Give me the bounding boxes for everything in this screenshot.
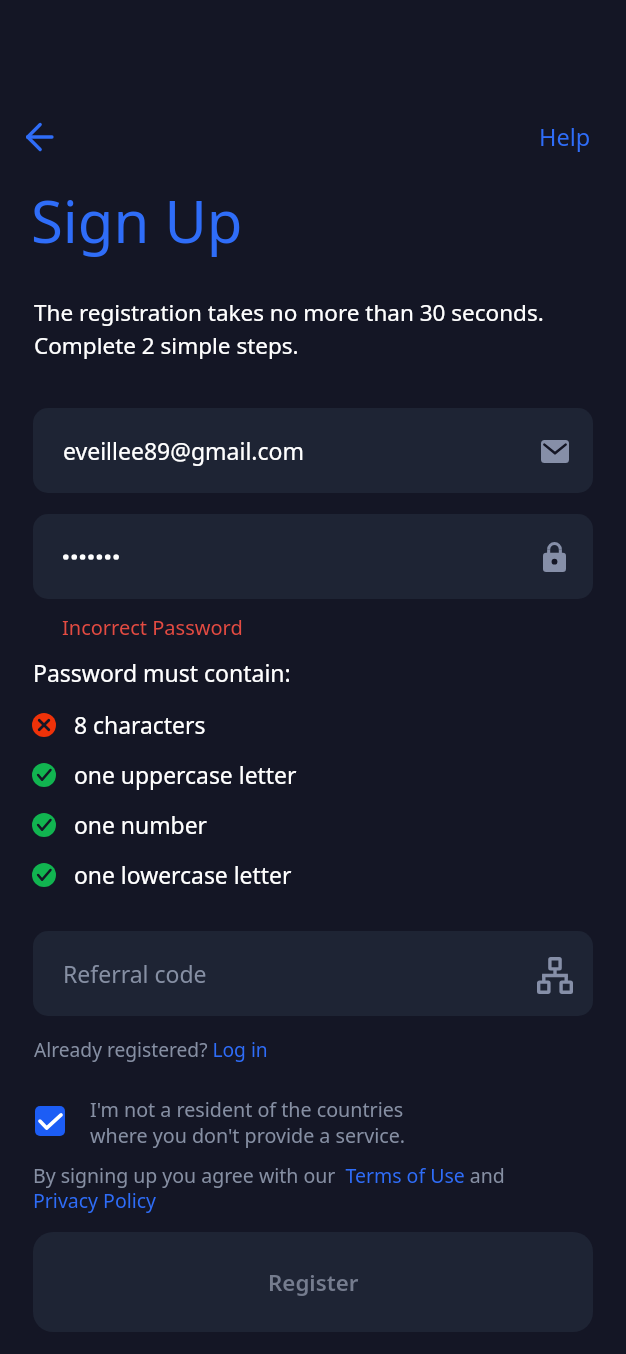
staticText: one number — [74, 810, 207, 841]
staticText: I'm not a resident of the countries wher… — [90, 1097, 406, 1149]
button[interactable]: Help — [527, 115, 603, 159]
staticText: eveillee89@gmail.com — [63, 435, 304, 466]
button[interactable]: Email — [33, 408, 593, 493]
staticText: Password must contain: — [33, 657, 291, 688]
staticText: Referral code — [63, 958, 207, 989]
staticText: Sign Up — [31, 181, 243, 260]
staticText: Incorrect Password — [62, 614, 243, 641]
staticText: one lowercase letter — [74, 860, 292, 891]
button[interactable]: Back — [16, 113, 63, 160]
staticText: Help — [539, 121, 591, 153]
staticText: The registration takes no more than 30 s… — [34, 295, 544, 361]
staticText: Already registered? Log in — [34, 1036, 268, 1062]
staticText: By signing up you agree with our Terms o… — [33, 1164, 505, 1214]
button[interactable]: Referral code — [33, 931, 593, 1016]
button[interactable]: Register — [33, 1232, 593, 1332]
button[interactable]: Already registered? Log in — [34, 1036, 268, 1062]
button[interactable]: Password — [33, 514, 593, 599]
staticText: Register — [268, 1267, 359, 1297]
button[interactable]: I'm not a resident of the countries wher… — [28, 1093, 428, 1153]
staticText: 8 characters — [74, 710, 206, 741]
staticText: one uppercase letter — [74, 760, 297, 791]
